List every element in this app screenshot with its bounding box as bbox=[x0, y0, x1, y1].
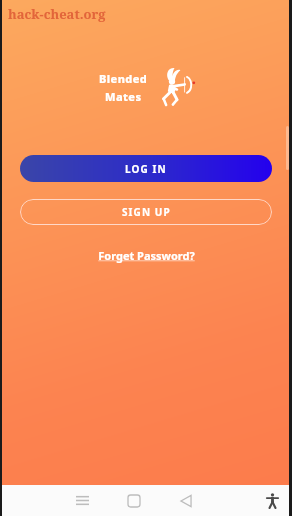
button[interactable]: Forget Password? bbox=[98, 248, 195, 263]
button[interactable]: Recent apps bbox=[56, 485, 108, 516]
staticText: LOG IN bbox=[125, 162, 167, 176]
staticText: Blended bbox=[99, 71, 148, 86]
staticText: Mates bbox=[105, 89, 142, 104]
button[interactable]: LOG IN bbox=[20, 155, 272, 182]
staticText: Forget Password? bbox=[98, 248, 195, 263]
staticText: SIGN UP bbox=[122, 205, 171, 219]
staticText: hack-cheat.org bbox=[8, 5, 106, 23]
button[interactable]: Home bbox=[108, 485, 160, 516]
button[interactable]: Back bbox=[160, 485, 212, 516]
button[interactable]: SIGN UP bbox=[20, 199, 272, 225]
button[interactable]: Accessibility bbox=[252, 485, 292, 516]
